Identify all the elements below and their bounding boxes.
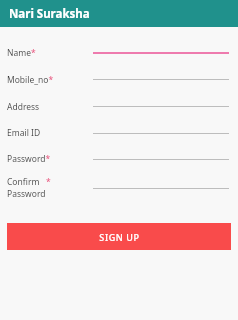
staticText: Address <box>7 101 40 113</box>
button[interactable]: Address <box>7 93 238 120</box>
staticText: Password <box>7 188 46 200</box>
button[interactable]: Confirm * <box>7 172 238 204</box>
staticText: Confirm * <box>7 176 51 188</box>
staticText: Mobile_no* <box>7 74 54 86</box>
button[interactable]: Email ID <box>7 120 238 146</box>
staticText: SIGN UP <box>99 231 140 243</box>
staticText: Nari Suraksha <box>9 6 90 22</box>
staticText: Password* <box>7 153 51 165</box>
button[interactable]: Mobile_no* <box>7 66 238 93</box>
button[interactable]: Password* <box>7 146 238 172</box>
button[interactable]: Name* <box>7 39 238 66</box>
button[interactable]: Nari Suraksha <box>0 0 238 27</box>
staticText: Name* <box>7 47 36 59</box>
button[interactable]: SIGN UP <box>7 223 231 250</box>
staticText: Email ID <box>7 127 41 139</box>
